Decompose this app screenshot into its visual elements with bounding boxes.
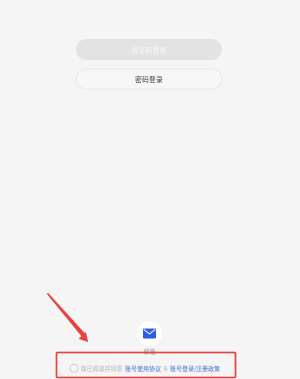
button[interactable]: 我已阅读并同意 xyxy=(70,364,220,372)
staticText: 密码登录 xyxy=(135,74,163,84)
staticText: 账号登录/注册政策 xyxy=(170,364,220,372)
button[interactable]: 验证码登录 xyxy=(76,39,222,60)
button[interactable]: 邮箱登录 xyxy=(137,321,162,346)
staticText: & xyxy=(163,364,167,372)
staticText: 我已阅读并同意 xyxy=(80,364,122,372)
staticText: 验证码登录 xyxy=(131,45,166,54)
staticText: 邮箱 xyxy=(143,347,155,355)
button[interactable]: 密码登录 xyxy=(76,69,222,89)
staticText: 账号使用协议 xyxy=(125,364,161,372)
